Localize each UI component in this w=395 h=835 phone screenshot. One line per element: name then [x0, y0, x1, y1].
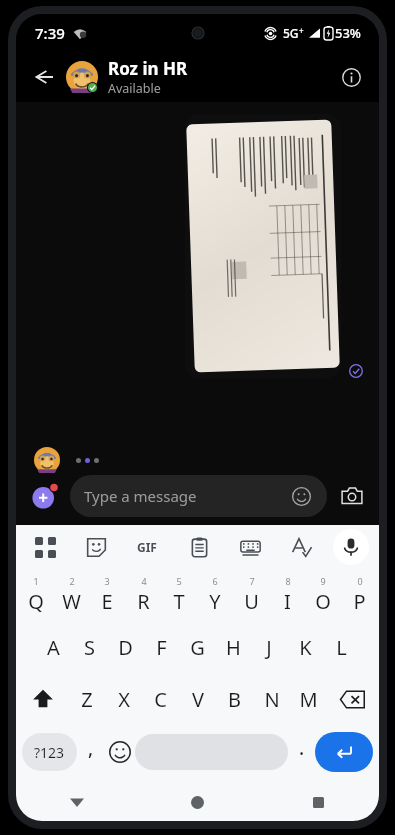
button[interactable]: K: [287, 621, 323, 673]
staticText: 5G: [283, 25, 299, 41]
staticText: 9: [320, 575, 326, 587]
button[interactable]: 0: [341, 569, 377, 621]
button[interactable]: Backspace: [327, 673, 377, 725]
button[interactable]: 2: [53, 569, 89, 621]
button[interactable]: Stickers: [77, 528, 115, 566]
staticText: GIF: [137, 539, 157, 555]
button[interactable]: Shift: [18, 673, 68, 725]
button[interactable]: Recent apps: [258, 783, 379, 821]
staticText: .: [299, 735, 305, 761]
button[interactable]: D: [107, 621, 143, 673]
staticText: J: [266, 634, 272, 661]
button[interactable]: Z: [68, 673, 105, 725]
button[interactable]: H: [215, 621, 251, 673]
button[interactable]: N: [253, 673, 290, 725]
staticText: 0: [357, 575, 363, 587]
staticText: H: [226, 634, 241, 661]
staticText: 7:39: [35, 23, 65, 43]
staticText: ,: [88, 735, 94, 761]
staticText: P: [353, 588, 366, 615]
staticText: L: [336, 634, 347, 661]
staticText: 6: [212, 575, 218, 587]
button[interactable]: 9: [305, 569, 341, 621]
button[interactable]: C: [142, 673, 179, 725]
button[interactable]: Text editing: [282, 528, 320, 566]
button[interactable]: Voice input: [333, 529, 369, 565]
staticText: A: [47, 634, 60, 661]
button[interactable]: Photo attachment: [185, 114, 341, 378]
staticText: 4: [141, 575, 147, 587]
button[interactable]: Add attachment: [28, 479, 62, 513]
staticText: T: [173, 588, 185, 615]
staticText: O: [315, 588, 331, 615]
staticText: 53%: [335, 24, 361, 42]
button[interactable]: G: [179, 621, 215, 673]
button[interactable]: 6: [197, 569, 233, 621]
staticText: 1: [33, 575, 39, 587]
staticText: 2: [69, 575, 75, 587]
button[interactable]: A: [35, 621, 71, 673]
staticText: I: [284, 588, 291, 615]
staticText: Z: [81, 686, 93, 713]
staticText: X: [118, 686, 130, 713]
button[interactable]: Roz in HR: [108, 57, 331, 97]
button[interactable]: 7: [233, 569, 269, 621]
staticText: E: [101, 588, 113, 615]
staticText: Available: [108, 80, 161, 97]
staticText: 3: [104, 575, 110, 587]
button[interactable]: 8: [269, 569, 305, 621]
staticText: M: [299, 686, 318, 713]
button[interactable]: B: [216, 673, 253, 725]
button[interactable]: F: [143, 621, 179, 673]
button[interactable]: ?123: [22, 733, 77, 771]
button[interactable]: 4: [125, 569, 161, 621]
staticText: Type a message: [84, 486, 289, 506]
button[interactable]: Keyboard settings: [231, 528, 269, 566]
staticText: C: [154, 686, 167, 713]
staticText: S: [84, 634, 95, 661]
button[interactable]: GIF: [128, 528, 166, 566]
button[interactable]: Emoji: [289, 484, 313, 508]
staticText: D: [118, 634, 133, 661]
button[interactable]: 5: [161, 569, 197, 621]
button[interactable]: Type a message: [70, 475, 327, 517]
button[interactable]: Clipboard: [180, 528, 218, 566]
staticText: R: [137, 588, 150, 615]
button[interactable]: 3: [89, 569, 125, 621]
staticText: F: [156, 634, 167, 661]
button[interactable]: M: [290, 673, 327, 725]
button[interactable]: Enter: [315, 732, 373, 772]
staticText: ?123: [34, 743, 65, 762]
staticText: W: [62, 588, 81, 615]
staticText: Q: [28, 588, 44, 615]
staticText: 8: [285, 575, 291, 587]
button[interactable]: J: [251, 621, 287, 673]
button[interactable]: 1: [18, 569, 53, 621]
staticText: Y: [209, 588, 221, 615]
staticText: N: [264, 686, 280, 713]
button[interactable]: .: [288, 725, 315, 779]
staticText: B: [228, 686, 241, 713]
button[interactable]: Emoji: [104, 725, 135, 779]
button[interactable]: V: [179, 673, 216, 725]
button[interactable]: Back: [16, 783, 137, 821]
staticText: U: [244, 588, 259, 615]
button[interactable]: X: [105, 673, 142, 725]
button[interactable]: Space: [135, 734, 288, 770]
button[interactable]: Home: [137, 783, 258, 821]
staticText: 7: [249, 575, 255, 587]
staticText: +: [299, 25, 304, 36]
staticText: K: [299, 634, 312, 661]
button[interactable]: L: [323, 621, 359, 673]
staticText: V: [192, 686, 204, 713]
staticText: G: [190, 634, 205, 661]
button[interactable]: Back: [24, 57, 64, 97]
button[interactable]: Camera: [335, 479, 369, 513]
button[interactable]: ,: [77, 725, 104, 779]
staticText: 5: [176, 575, 182, 587]
button[interactable]: S: [71, 621, 107, 673]
button[interactable]: Apps: [26, 528, 64, 566]
staticText: Roz in HR: [108, 57, 188, 80]
button[interactable]: Conversation info: [331, 57, 371, 97]
